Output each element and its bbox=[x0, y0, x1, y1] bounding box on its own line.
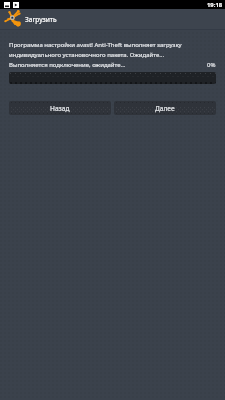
staticText: 0% bbox=[207, 61, 216, 69]
staticText: Далее bbox=[155, 104, 175, 113]
staticText: Программа настройки avast! Anti-Theft вы… bbox=[9, 41, 216, 58]
staticText: Загрузить bbox=[25, 15, 57, 24]
other: Notification bbox=[4, 2, 10, 8]
staticText: 19:18 bbox=[207, 1, 223, 9]
button[interactable]: Далее bbox=[114, 101, 216, 115]
other: Download bbox=[13, 2, 19, 8]
staticText: Выполняется подключение, ожидайте... bbox=[9, 61, 126, 69]
button[interactable]: Назад bbox=[9, 101, 111, 115]
staticText: Назад bbox=[50, 104, 70, 113]
